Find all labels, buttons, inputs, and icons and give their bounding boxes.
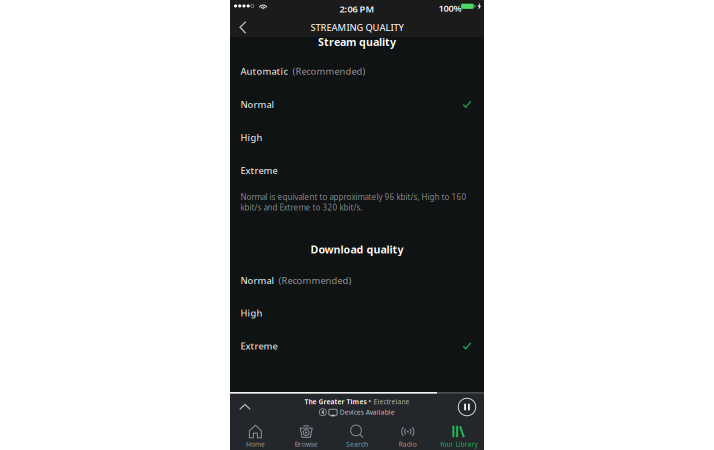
button[interactable]: Search — [332, 420, 382, 450]
button[interactable]: Back — [230, 18, 256, 37]
staticText: STREAMING QUALITY — [310, 21, 403, 34]
staticText: Search — [346, 440, 368, 449]
button[interactable]: Radio — [382, 420, 433, 450]
staticText: High — [240, 131, 262, 144]
staticText: Home — [246, 440, 265, 449]
button[interactable]: Extreme — [230, 154, 484, 187]
button[interactable]: Your Library — [433, 420, 484, 450]
staticText: Download quality — [310, 242, 403, 256]
button[interactable]: Pause — [452, 394, 482, 420]
staticText: Normal — [240, 98, 274, 110]
button[interactable]: Expand player — [230, 394, 260, 420]
staticText: The Greater Times — [304, 397, 366, 406]
staticText: Electrelane — [373, 397, 409, 406]
button[interactable]: Browse — [281, 420, 332, 450]
staticText: Normal — [240, 274, 274, 286]
staticText: Devices Available — [340, 408, 395, 417]
staticText: 2:06 PM — [339, 3, 374, 15]
staticText: Browse — [295, 440, 318, 449]
staticText: (Recommended) — [274, 274, 351, 286]
staticText: Extreme — [240, 340, 277, 352]
button[interactable]: High — [230, 121, 484, 154]
staticText: Normal is equivalent to approximately 96… — [240, 191, 466, 213]
staticText: Automatic — [240, 65, 288, 77]
button[interactable]: Automatic — [230, 55, 484, 88]
button[interactable]: High — [230, 296, 484, 329]
button[interactable]: Extreme — [230, 329, 484, 362]
staticText: (Recommended) — [288, 65, 365, 77]
staticText: Stream quality — [318, 35, 396, 49]
button[interactable]: Normal — [230, 88, 484, 121]
staticText: High — [240, 307, 262, 319]
button[interactable]: Home — [230, 420, 281, 450]
button[interactable]: Normal — [230, 264, 484, 297]
staticText: • — [366, 397, 373, 406]
staticText: Your Library — [440, 440, 478, 449]
staticText: Radio — [399, 440, 417, 449]
staticText: Extreme — [240, 164, 277, 177]
staticText: 100% — [438, 2, 461, 14]
